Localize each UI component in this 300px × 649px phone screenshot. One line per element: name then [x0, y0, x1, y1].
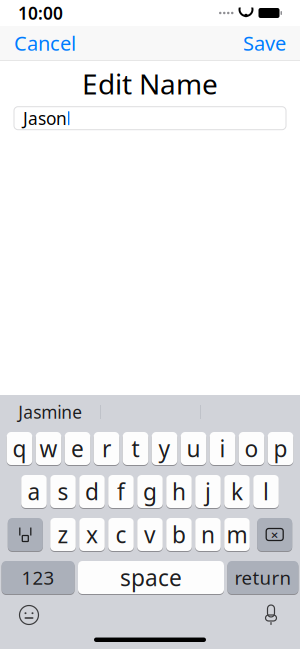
button[interactable]: w	[36, 431, 61, 466]
button[interactable]: p	[268, 431, 293, 466]
button[interactable]: x	[79, 517, 105, 552]
button[interactable]: Emoji	[12, 600, 46, 630]
staticText: u	[186, 433, 200, 463]
staticText: l	[263, 476, 269, 506]
staticText: a	[27, 476, 40, 506]
button[interactable]: b	[166, 517, 192, 552]
staticText: Jasmine	[18, 400, 82, 423]
button[interactable]: h	[166, 474, 192, 509]
button[interactable]: space	[78, 560, 224, 595]
staticText: b	[172, 519, 186, 549]
button[interactable]: u	[181, 431, 206, 466]
staticText: return	[234, 565, 291, 590]
staticText: q	[12, 433, 26, 463]
button[interactable]: t	[123, 431, 148, 466]
button[interactable]: Save	[229, 26, 300, 60]
button[interactable]: j	[195, 474, 221, 509]
button[interactable]: o	[239, 431, 264, 466]
button[interactable]: r	[94, 431, 119, 466]
button[interactable]: q	[7, 431, 32, 466]
staticText: c	[115, 519, 126, 549]
button[interactable]: Dictation	[254, 600, 288, 630]
staticText: y	[158, 433, 170, 463]
staticText: i	[219, 433, 225, 463]
button[interactable]: v	[137, 517, 163, 552]
button[interactable]: e	[65, 431, 90, 466]
button[interactable]: y	[152, 431, 177, 466]
button[interactable]: z	[50, 517, 76, 552]
staticText: Edit Name	[82, 65, 218, 102]
button[interactable]: k	[224, 474, 250, 509]
button[interactable]: a	[21, 474, 47, 509]
staticText: Save	[243, 30, 286, 56]
staticText: 10:00	[18, 1, 63, 24]
button[interactable]: s	[50, 474, 76, 509]
staticText: o	[244, 433, 258, 463]
button[interactable]: Jasmine	[0, 395, 100, 429]
staticText: g	[143, 476, 157, 506]
staticText: z	[57, 519, 68, 549]
staticText: n	[201, 519, 215, 549]
button[interactable]: return	[227, 560, 298, 595]
button[interactable]: f	[108, 474, 134, 509]
button[interactable]: Shift	[8, 517, 43, 552]
button[interactable]: d	[79, 474, 105, 509]
button[interactable]: l	[253, 474, 279, 509]
staticText: v	[144, 519, 156, 549]
button[interactable]: g	[137, 474, 163, 509]
staticText: r	[102, 433, 111, 463]
staticText: m	[226, 519, 247, 549]
staticText: w	[39, 433, 57, 463]
staticText: ×	[271, 526, 279, 543]
button[interactable]: Cancel	[0, 26, 90, 60]
staticText: d	[85, 476, 99, 506]
staticText: f	[117, 476, 125, 506]
button[interactable]: Delete	[257, 517, 292, 552]
staticText: 123	[22, 565, 55, 590]
staticText: x	[86, 519, 98, 549]
staticText: Jason	[23, 107, 67, 130]
staticText: e	[71, 433, 84, 463]
staticText: space	[120, 562, 182, 592]
button[interactable]: i	[210, 431, 235, 466]
button[interactable]: m	[224, 517, 250, 552]
button[interactable]: n	[195, 517, 221, 552]
staticText: j	[205, 476, 211, 506]
staticText: h	[172, 476, 186, 506]
staticText: Cancel	[14, 30, 76, 56]
staticText: t	[131, 433, 139, 463]
staticText: s	[57, 476, 68, 506]
button[interactable]: 123	[2, 560, 75, 595]
staticText: p	[273, 433, 287, 463]
button[interactable]: c	[108, 517, 134, 552]
staticText: k	[231, 476, 243, 506]
